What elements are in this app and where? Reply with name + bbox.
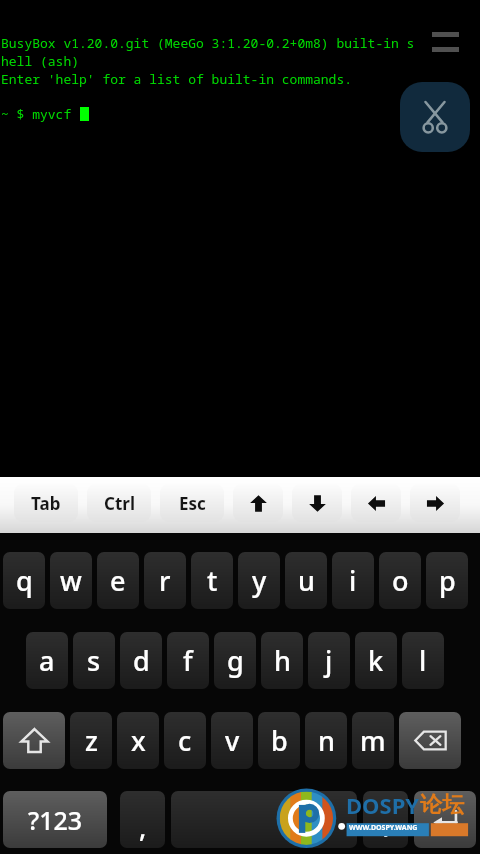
staticText: g (227, 642, 244, 679)
staticText: j (325, 642, 333, 679)
staticText: ?123 (28, 803, 83, 837)
staticText: v (225, 722, 240, 759)
staticText: c (178, 722, 192, 759)
button[interactable]: g (214, 632, 256, 689)
button[interactable]: Esc (160, 484, 224, 522)
button[interactable]: Space (171, 791, 357, 848)
button[interactable]: v (211, 712, 253, 769)
button[interactable]: Backspace (399, 712, 461, 769)
staticText: h (274, 642, 291, 679)
staticText: u (298, 562, 315, 599)
button[interactable]: i (332, 552, 374, 609)
staticText: z (85, 722, 98, 759)
button[interactable]: o (379, 552, 421, 609)
staticText: m (360, 722, 386, 759)
staticText: f (183, 642, 193, 679)
button[interactable]: q (3, 552, 45, 609)
button[interactable]: Up (233, 484, 283, 522)
button[interactable]: c (164, 712, 206, 769)
button[interactable]: . (363, 791, 408, 848)
staticText: y (252, 562, 267, 599)
button[interactable]: Down (292, 484, 342, 522)
button[interactable]: Right (410, 484, 460, 522)
button[interactable]: ?123 (3, 791, 107, 848)
staticText: Ctrl (104, 492, 135, 515)
staticText: WWW.DOSPY.WANG (349, 823, 418, 833)
button[interactable]: j (308, 632, 350, 689)
staticText: ~ $ myvcf (1, 105, 80, 123)
button[interactable]: y (238, 552, 280, 609)
button[interactable]: , (120, 791, 165, 848)
button[interactable]: d (120, 632, 162, 689)
staticText: w (60, 562, 82, 599)
staticText: d (133, 642, 150, 679)
staticText: q (16, 562, 33, 599)
button[interactable]: Tab (14, 484, 78, 522)
button[interactable]: f (167, 632, 209, 689)
button[interactable]: u (285, 552, 327, 609)
staticText: Esc (179, 492, 206, 515)
button[interactable]: e (97, 552, 139, 609)
button[interactable]: p (426, 552, 468, 609)
staticText: , (139, 808, 147, 845)
staticText: 论坛 (420, 791, 464, 819)
staticText: Tab (31, 492, 61, 515)
button[interactable]: w (50, 552, 92, 609)
button[interactable]: b (258, 712, 300, 769)
button[interactable]: Left (351, 484, 401, 522)
staticText: e (110, 562, 126, 599)
button[interactable]: a (26, 632, 68, 689)
staticText: t (207, 562, 218, 599)
button[interactable]: m (352, 712, 394, 769)
staticText: s (87, 642, 101, 679)
button[interactable]: k (355, 632, 397, 689)
staticText: l (419, 642, 427, 679)
button[interactable]: Ctrl (87, 484, 151, 522)
button[interactable]: x (117, 712, 159, 769)
staticText: DOSPY (346, 790, 420, 820)
staticText: n (318, 722, 335, 759)
staticText: BusyBox v1.20.0.git (MeeGo 3:1.20-0.2+0m… (1, 34, 415, 52)
button[interactable]: t (191, 552, 233, 609)
button[interactable]: Cut (400, 82, 470, 152)
staticText: o (392, 562, 409, 599)
button[interactable]: z (70, 712, 112, 769)
button[interactable]: l (402, 632, 444, 689)
button[interactable]: Enter (414, 791, 476, 848)
staticText: x (131, 722, 146, 759)
staticText: p (439, 562, 456, 599)
staticText: hell (ash) (1, 52, 80, 70)
button[interactable]: h (261, 632, 303, 689)
staticText: i (349, 562, 357, 599)
button[interactable]: Shift (3, 712, 65, 769)
staticText: a (39, 642, 55, 679)
staticText: . (382, 808, 390, 845)
button[interactable]: s (73, 632, 115, 689)
button[interactable]: n (305, 712, 347, 769)
staticText: Enter 'help' for a list of built-in comm… (1, 70, 352, 88)
staticText: b (271, 722, 288, 759)
staticText: r (159, 562, 171, 599)
button[interactable]: r (144, 552, 186, 609)
staticText: k (368, 642, 384, 679)
